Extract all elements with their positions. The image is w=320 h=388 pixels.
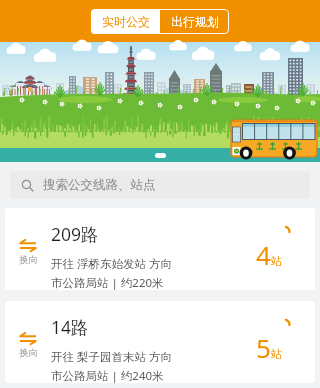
staticText: 4 — [256, 237, 271, 272]
staticText: 市公路局站 | 约220米 — [51, 275, 164, 290]
staticText: 出行规划 — [171, 14, 219, 29]
button[interactable]: 实时公交 — [91, 9, 160, 34]
button[interactable]: 换向 (reverse direction) — [5, 332, 51, 359]
button[interactable]: 换向 (reverse direction) — [5, 301, 315, 383]
staticText: 5 — [256, 330, 271, 365]
staticText: 站 — [271, 254, 282, 268]
staticText: 换向 — [19, 347, 38, 359]
staticText: 14路 — [51, 315, 89, 339]
staticText: 市公路局站 | 约240米 — [51, 368, 164, 383]
staticText: 搜索公交线路、站点 — [43, 177, 156, 193]
button[interactable]: 出行规划 — [160, 9, 229, 34]
staticText: 实时公交 — [102, 14, 150, 29]
staticText: 开往 浮桥东始发站 方向 — [51, 256, 172, 272]
button[interactable]: 搜索公交线路、站点 — [10, 171, 310, 199]
button[interactable]: 换向 (reverse direction) — [5, 208, 315, 290]
staticText: 换向 — [19, 254, 38, 266]
button[interactable]: 换向 (reverse direction) — [5, 239, 51, 266]
staticText: 209路 — [51, 222, 99, 246]
staticText: 开往 梨子园首末站 方向 — [51, 349, 172, 365]
staticText: 站 — [271, 347, 282, 361]
